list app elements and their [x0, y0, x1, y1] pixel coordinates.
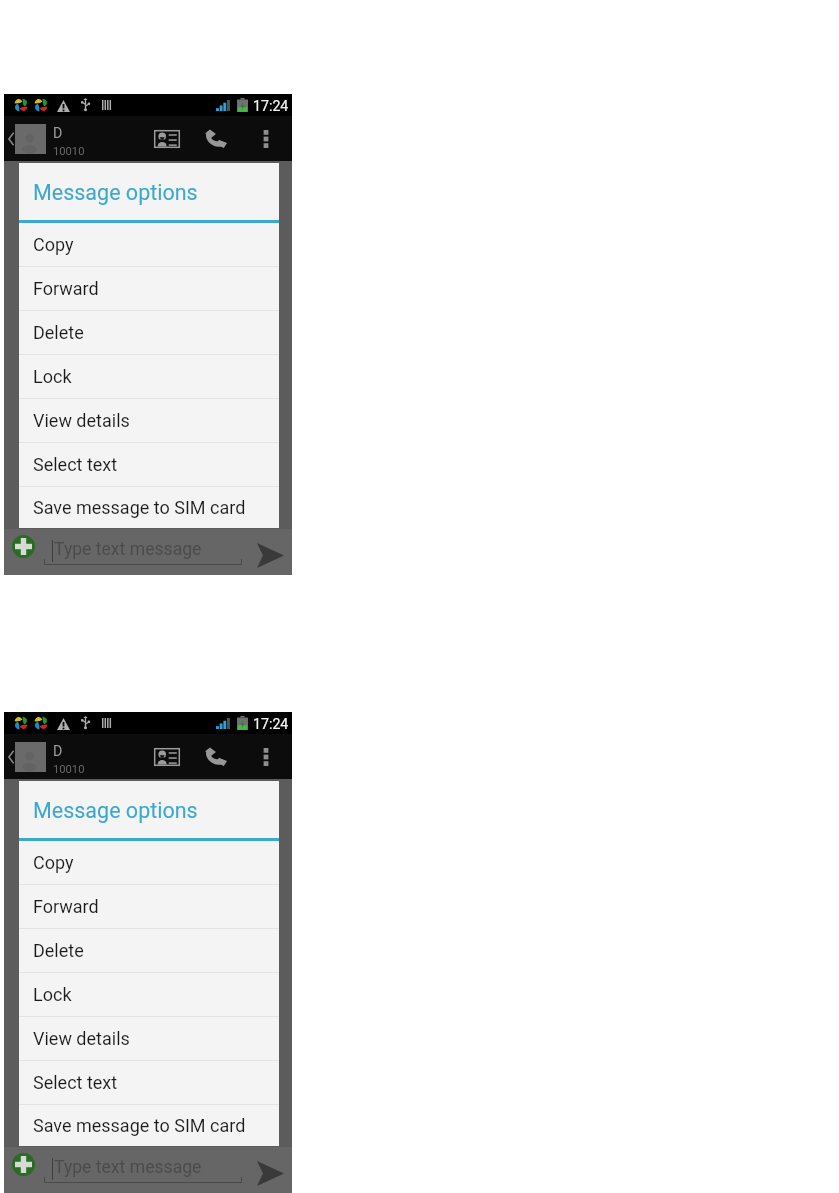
button[interactable]: Add attachment	[12, 1153, 35, 1176]
staticText: 10010	[53, 145, 85, 158]
button[interactable]: More options	[248, 120, 284, 157]
button[interactable]: Send	[250, 1153, 290, 1193]
button[interactable]: Copy	[19, 223, 279, 266]
button[interactable]: Save message to SIM card	[19, 487, 279, 528]
staticText: Message options	[33, 180, 198, 205]
button[interactable]: Select text	[19, 443, 279, 486]
staticText: Copy	[33, 852, 74, 873]
staticText: Copy	[33, 234, 74, 255]
button[interactable]: Delete	[19, 929, 279, 972]
staticText: Select text	[33, 1072, 118, 1093]
staticText: Message options	[33, 798, 198, 823]
button[interactable]: Delete	[19, 311, 279, 354]
button[interactable]: Select text	[19, 1061, 279, 1104]
button[interactable]: People	[145, 120, 189, 157]
staticText: D	[53, 125, 63, 142]
staticText: Save message to SIM card	[33, 1115, 246, 1136]
button[interactable]: More options	[248, 738, 284, 775]
button[interactable]: Lock	[19, 355, 279, 398]
other: Back	[8, 750, 14, 764]
button[interactable]: View details	[19, 1017, 279, 1060]
button[interactable]: View details	[19, 399, 279, 442]
staticText: 10010	[53, 763, 85, 776]
staticText: Lock	[33, 366, 72, 387]
button[interactable]: Copy	[19, 841, 279, 884]
staticText: Delete	[33, 940, 84, 961]
staticText: D	[53, 743, 63, 760]
staticText: 17:24	[253, 98, 289, 115]
staticText: View details	[33, 410, 130, 431]
button[interactable]: Call	[193, 120, 237, 157]
staticText: 17:24	[253, 716, 289, 733]
button[interactable]: Save message to SIM card	[19, 1105, 279, 1146]
button[interactable]: Forward	[19, 885, 279, 928]
button[interactable]: Call	[193, 738, 237, 775]
staticText: Select text	[33, 454, 118, 475]
staticText: Delete	[33, 322, 84, 343]
button[interactable]: Back	[4, 116, 92, 161]
button[interactable]: Send	[250, 535, 290, 575]
staticText: Lock	[33, 984, 72, 1005]
button[interactable]: Forward	[19, 267, 279, 310]
staticText: Type text message	[54, 539, 202, 560]
button[interactable]: People	[145, 738, 189, 775]
button[interactable]: Lock	[19, 973, 279, 1016]
button[interactable]: Back	[4, 734, 92, 779]
staticText: Forward	[33, 278, 99, 299]
other: Back	[8, 132, 14, 146]
staticText: Save message to SIM card	[33, 497, 246, 518]
staticText: Type text message	[54, 1157, 202, 1178]
staticText: View details	[33, 1028, 130, 1049]
staticText: Forward	[33, 896, 99, 917]
button[interactable]: Add attachment	[12, 535, 35, 558]
